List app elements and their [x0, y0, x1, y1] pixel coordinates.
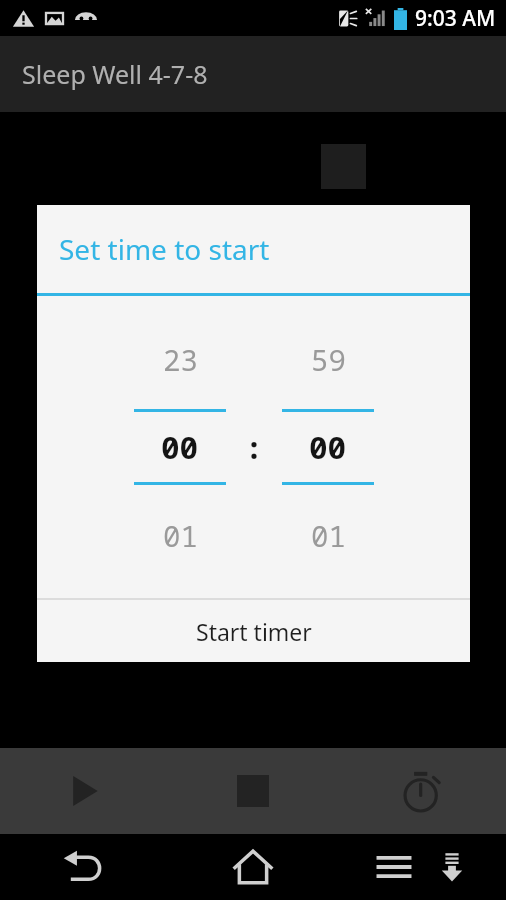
button[interactable]: Stop	[168, 748, 337, 834]
button[interactable]: Back	[0, 834, 168, 900]
button[interactable]: Start timer	[37, 600, 470, 662]
staticText: Start timer	[196, 616, 312, 647]
staticText: Sleep Well 4-7-8	[22, 57, 208, 91]
staticText: 59	[311, 340, 346, 379]
button[interactable]: 59	[282, 329, 374, 565]
staticText: :	[245, 427, 263, 468]
staticText: 00	[161, 426, 199, 468]
button[interactable]: Home	[168, 834, 337, 900]
button[interactable]: Play	[0, 748, 168, 834]
button[interactable]: 23	[134, 329, 226, 565]
staticText: 00	[309, 426, 347, 468]
staticText: 01	[163, 516, 198, 555]
staticText: 23	[163, 340, 198, 379]
staticText: 9:03 AM	[415, 4, 496, 33]
button[interactable]: Hide keyboard	[431, 846, 473, 888]
staticText: 01	[311, 516, 346, 555]
button[interactable]: Menu	[371, 844, 417, 890]
staticText: Set time to start	[59, 230, 270, 268]
button[interactable]: Timer	[337, 748, 506, 834]
